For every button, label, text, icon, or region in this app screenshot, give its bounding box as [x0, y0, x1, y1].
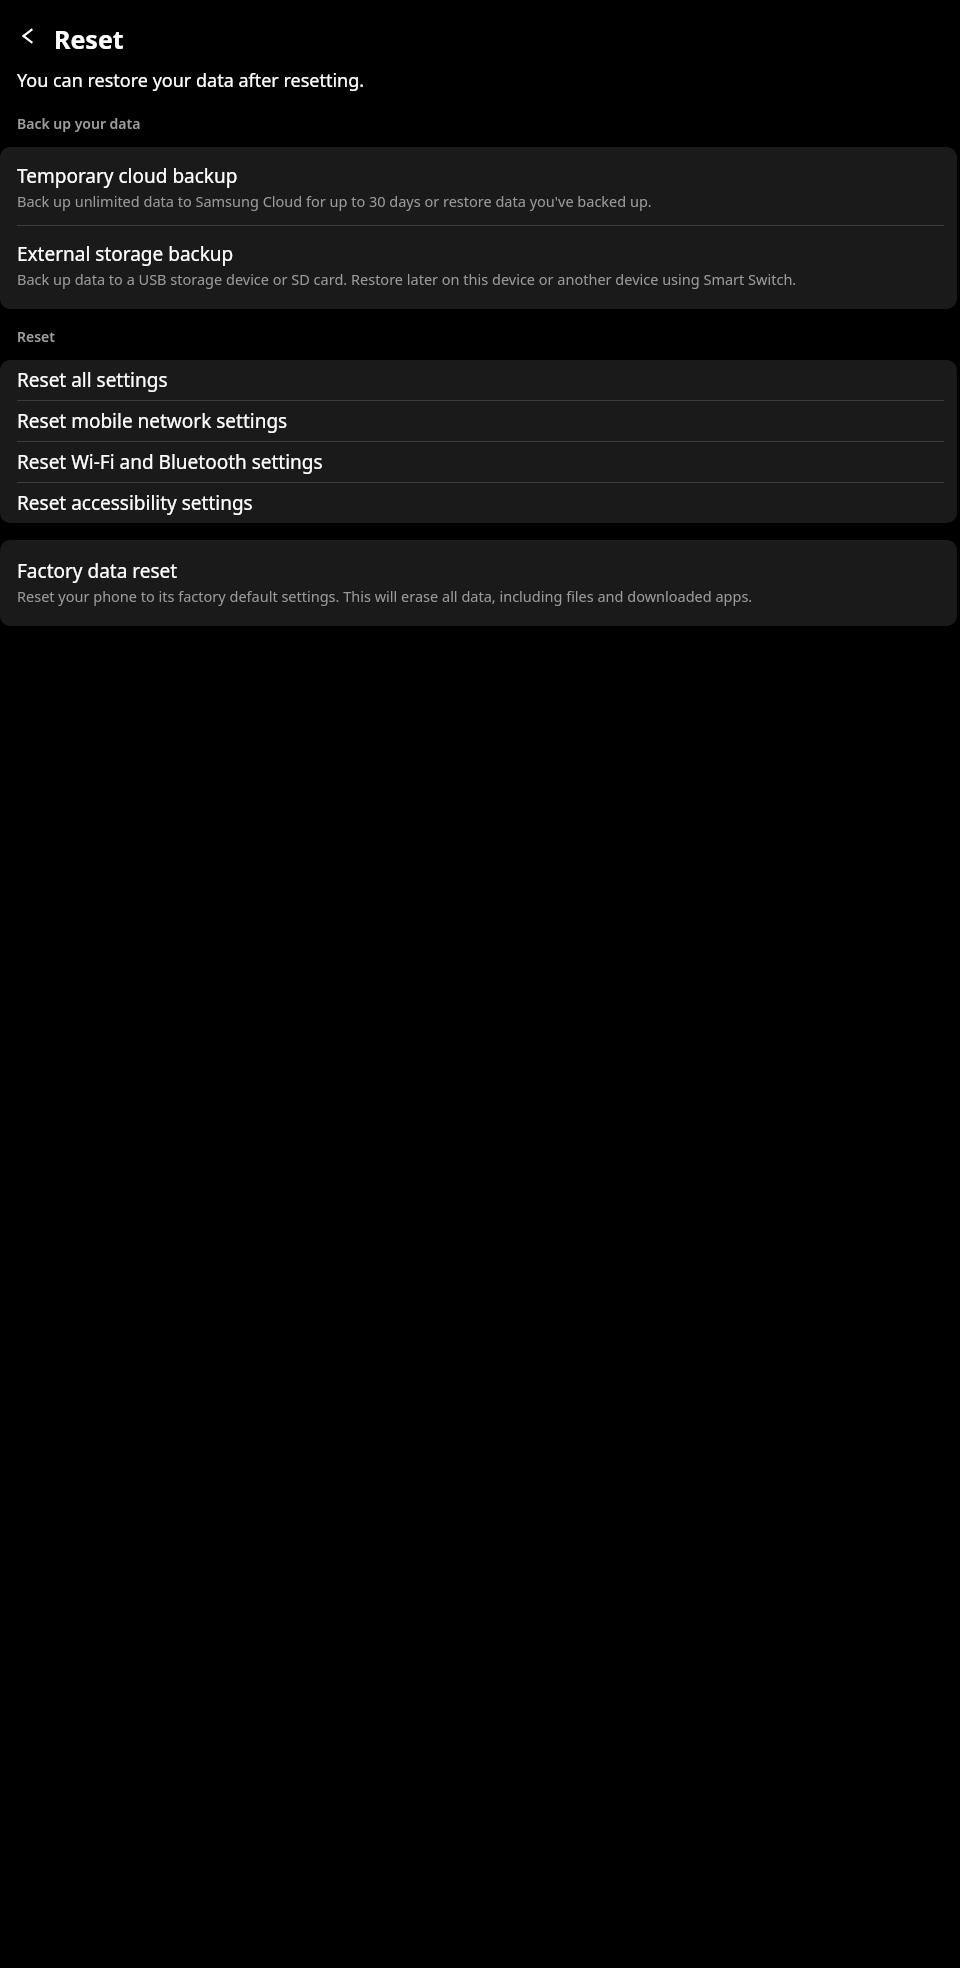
- staticText: Back up unlimited data to Samsung Cloud …: [17, 191, 652, 211]
- staticText: You can restore your data after resettin…: [17, 68, 365, 93]
- button[interactable]: Reset all settings: [0, 360, 957, 400]
- staticText: Reset mobile network settings: [17, 408, 288, 434]
- staticText: Reset: [17, 327, 55, 346]
- staticText: Temporary cloud backup: [17, 163, 238, 189]
- button[interactable]: Reset mobile network settings: [0, 401, 957, 441]
- staticText: Reset Wi-Fi and Bluetooth settings: [17, 449, 323, 475]
- staticText: External storage backup: [17, 241, 234, 267]
- button[interactable]: Reset Wi-Fi and Bluetooth settings: [0, 442, 957, 482]
- staticText: Back up data to a USB storage device or …: [17, 269, 797, 289]
- button[interactable]: Reset accessibility settings: [0, 483, 957, 523]
- button[interactable]: External storage backup: [0, 226, 957, 309]
- staticText: Factory data reset: [17, 558, 178, 584]
- button[interactable]: Back: [14, 22, 42, 50]
- staticText: Reset all settings: [17, 367, 168, 393]
- staticText: Reset: [54, 22, 124, 50]
- staticText: Back up your data: [17, 114, 141, 133]
- staticText: Reset your phone to its factory default …: [17, 586, 753, 606]
- button[interactable]: Temporary cloud backup: [0, 147, 957, 225]
- button[interactable]: Factory data reset: [0, 540, 957, 626]
- staticText: Reset accessibility settings: [17, 490, 253, 516]
